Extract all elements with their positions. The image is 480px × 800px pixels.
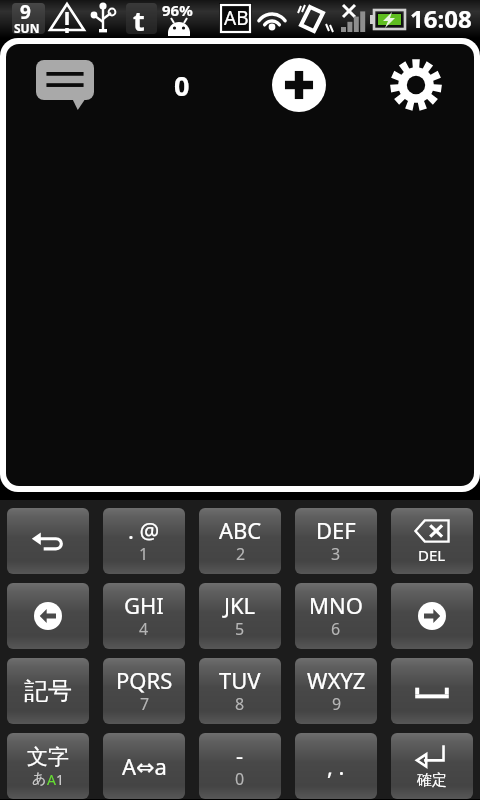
staticText: GHI [124, 590, 164, 620]
button[interactable]: JKL [199, 583, 281, 649]
staticText: MNO [309, 590, 363, 620]
staticText: 0 [235, 768, 245, 790]
staticText: 8 [235, 693, 245, 715]
staticText: DEL [418, 545, 446, 565]
staticText: ABC [219, 515, 262, 545]
staticText: 16:08 [410, 2, 472, 35]
staticText: 4 [139, 618, 149, 640]
button[interactable]: Undo [7, 508, 89, 574]
button[interactable]: Messages [6, 44, 123, 126]
staticText: 96% [162, 0, 193, 20]
staticText: AB [224, 5, 249, 31]
staticText: , . [327, 751, 345, 781]
button[interactable]: GHI [103, 583, 185, 649]
button[interactable]: Add [240, 44, 357, 126]
staticText: - [236, 740, 244, 770]
button[interactable]: 確定 [391, 733, 473, 799]
staticText: 文字 [27, 744, 69, 770]
staticText: 5 [235, 618, 245, 640]
button[interactable]: - [199, 733, 281, 799]
staticText: SUN [14, 20, 40, 36]
staticText: あ [32, 770, 47, 788]
button[interactable]: MNO [295, 583, 377, 649]
button[interactable]: TUV [199, 658, 281, 724]
button[interactable]: 文字 [7, 733, 89, 799]
staticText: JKL [224, 590, 256, 620]
staticText: 3 [331, 543, 341, 565]
staticText: 9 [332, 693, 342, 715]
staticText: 1 [56, 770, 65, 789]
button[interactable]: A⇔a [103, 733, 185, 799]
button[interactable]: DEL [391, 508, 473, 574]
staticText: WXYZ [307, 665, 366, 695]
button[interactable]: Right [391, 583, 473, 649]
button[interactable]: , . [295, 733, 377, 799]
staticText: 記号 [24, 676, 72, 706]
staticText: 確定 [417, 771, 447, 790]
staticText: DEF [316, 515, 356, 545]
button[interactable]: PQRS [103, 658, 185, 724]
staticText: t [133, 2, 145, 39]
staticText: TUV [219, 665, 261, 695]
button[interactable]: Settings [357, 44, 474, 126]
staticText: PQRS [116, 665, 173, 695]
button[interactable]: DEF [295, 508, 377, 574]
staticText: 9 [20, 0, 31, 25]
staticText: A⇔a [122, 751, 167, 781]
staticText: A [47, 770, 56, 789]
button[interactable]: Left [7, 583, 89, 649]
button[interactable]: WXYZ [295, 658, 377, 724]
staticText: . @ [128, 515, 160, 545]
button[interactable]: . @ [103, 508, 185, 574]
staticText: 7 [140, 693, 150, 715]
button[interactable]: 記号 [7, 658, 89, 724]
button[interactable]: ABC [199, 508, 281, 574]
staticText: 1 [139, 543, 149, 565]
staticText: 0 [174, 67, 190, 104]
staticText: 2 [236, 543, 246, 565]
button[interactable]: Space [391, 658, 473, 724]
staticText: 6 [331, 618, 341, 640]
